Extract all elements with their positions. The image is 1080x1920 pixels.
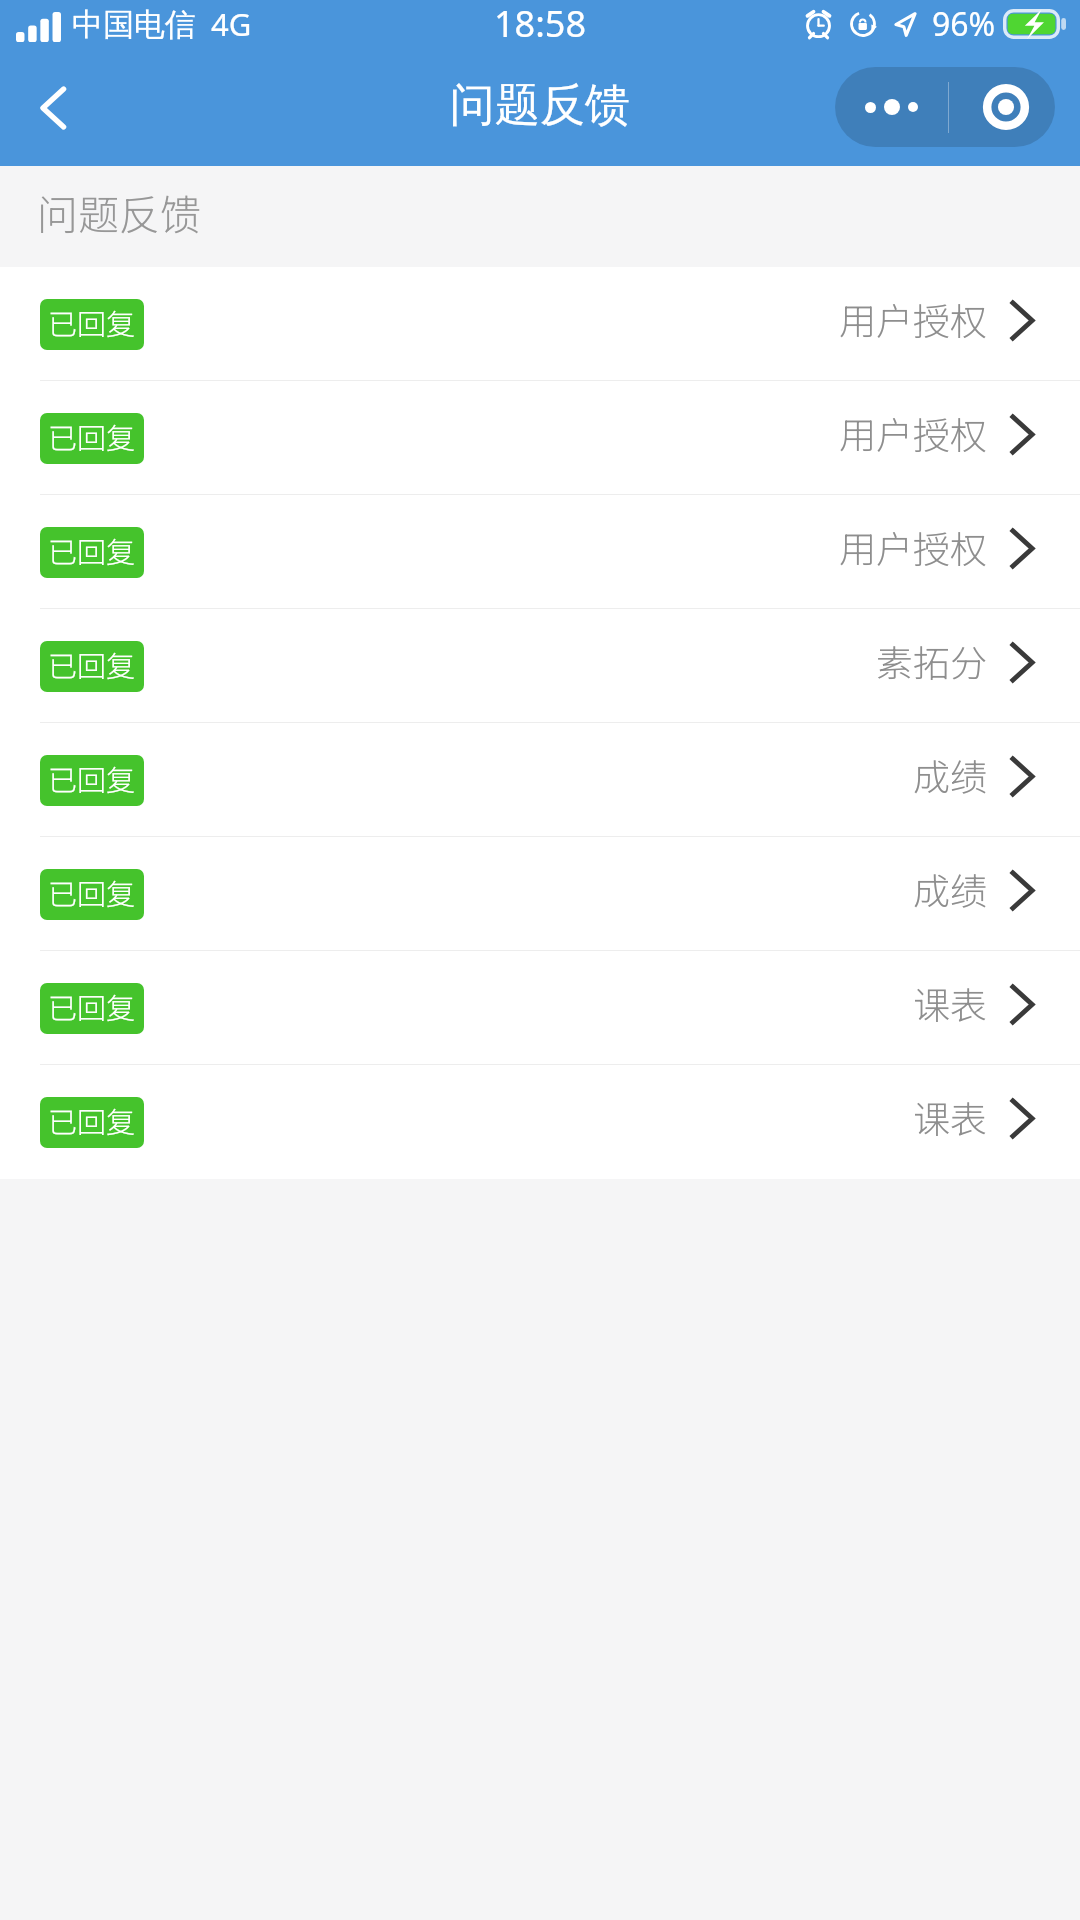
staticText: 课表 <box>913 976 987 1030</box>
button[interactable]: 已回复 <box>0 1065 1080 1179</box>
staticText: 问题反馈 <box>37 182 201 241</box>
button[interactable]: 已回复 <box>0 837 1080 951</box>
staticText: 用户授权 <box>839 292 987 346</box>
staticText: 已回复 <box>48 529 136 571</box>
staticText: 已回复 <box>48 415 136 457</box>
staticText: 中国电信 <box>72 5 196 44</box>
staticText: 成绩 <box>913 862 987 916</box>
button[interactable]: 已回复 <box>0 267 1080 381</box>
staticText: 用户授权 <box>839 520 987 574</box>
staticText: 18:58 <box>494 0 587 47</box>
staticText: 已回复 <box>48 757 136 799</box>
staticText: 96% <box>932 2 996 46</box>
staticText: 成绩 <box>913 748 987 802</box>
button[interactable]: More options <box>835 67 948 147</box>
staticText: 已回复 <box>48 871 136 913</box>
staticText: 课表 <box>913 1090 987 1144</box>
button[interactable]: 已回复 <box>0 495 1080 609</box>
staticText: 4G <box>211 3 252 45</box>
button[interactable]: 已回复 <box>0 951 1080 1065</box>
button[interactable]: Back <box>14 68 92 146</box>
staticText: 已回复 <box>48 1099 136 1141</box>
staticText: 用户授权 <box>839 406 987 460</box>
staticText: 素拓分 <box>876 634 987 688</box>
staticText: 问题反馈 <box>450 77 630 134</box>
button[interactable]: 已回复 <box>0 381 1080 495</box>
button[interactable]: 已回复 <box>0 609 1080 723</box>
button[interactable]: Close mini program <box>949 67 1055 147</box>
staticText: 已回复 <box>48 985 136 1027</box>
button[interactable]: 已回复 <box>0 723 1080 837</box>
staticText: 已回复 <box>48 301 136 343</box>
staticText: 已回复 <box>48 643 136 685</box>
